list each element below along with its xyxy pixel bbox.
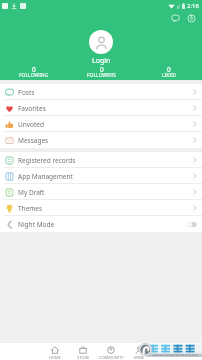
button[interactable]: Themes (0, 200, 202, 216)
staticText: Night Mode (18, 220, 55, 229)
button[interactable]: HOME (41, 346, 69, 360)
staticText: My Draft (18, 188, 45, 197)
button[interactable]: 0 (68, 62, 135, 78)
staticText: HOME (49, 355, 61, 360)
staticText: FOLLOWING (19, 72, 49, 79)
staticText: Messages (18, 136, 49, 145)
staticText: LIKED (162, 72, 176, 79)
button[interactable] (89, 30, 113, 54)
staticText: Login (92, 56, 111, 66)
button[interactable]: MINE (125, 346, 153, 360)
button[interactable]: Messages (0, 132, 202, 148)
button[interactable]: Messages (168, 11, 182, 25)
button[interactable]: Settings (184, 11, 198, 25)
staticText: FOLLOWERS (87, 72, 116, 79)
staticText: Themes (18, 204, 43, 213)
staticText: Registered records (18, 156, 76, 165)
staticText: App Management (18, 172, 73, 181)
staticText: Unvoted (18, 120, 45, 129)
button[interactable]: Night Mode (0, 216, 202, 232)
staticText: COMMUNITY (99, 355, 124, 360)
button[interactable]: Unvoted (0, 116, 202, 132)
staticText: 2:16 (187, 2, 199, 10)
staticText: STORE (77, 355, 90, 360)
staticText: Posts (18, 88, 35, 97)
staticText: MINE (134, 355, 145, 360)
button[interactable]: My Draft (0, 184, 202, 200)
button[interactable]: App Management (0, 168, 202, 184)
button[interactable]: Posts (0, 84, 202, 100)
button[interactable]: Favorites (0, 100, 202, 116)
staticText: 0 (167, 65, 171, 74)
button[interactable]: 0 (135, 62, 202, 78)
button[interactable]: Registered records (0, 152, 202, 168)
button[interactable]: COMMUNITY (97, 346, 125, 360)
staticText: 0 (32, 65, 36, 74)
staticText: 0 (100, 65, 104, 74)
button[interactable]: STORE (69, 346, 97, 360)
staticText: Favorites (18, 104, 46, 113)
button[interactable]: 0 (0, 62, 68, 78)
